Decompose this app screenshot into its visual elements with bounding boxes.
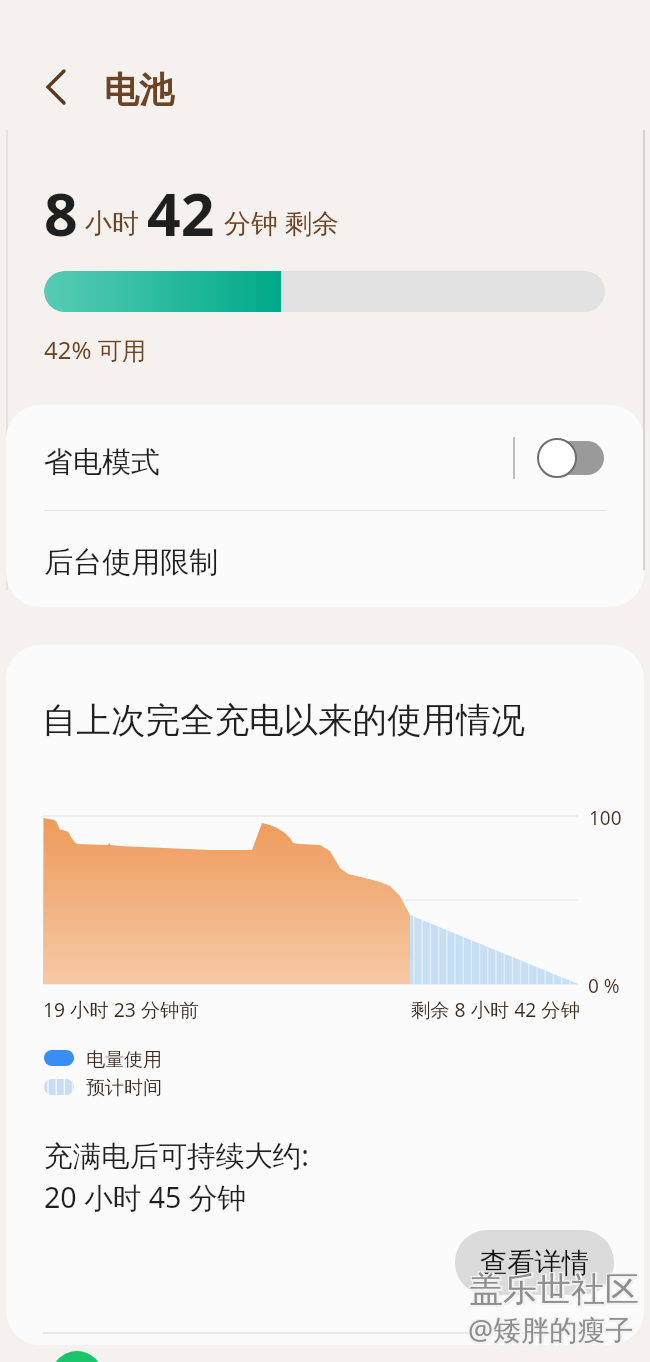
staticText: 省电模式 [44,444,160,481]
staticText: 19 小时 23 分钟前 [43,996,199,1022]
staticText: 盖乐世社区 [469,1268,639,1311]
button[interactable]: Back [29,60,83,114]
staticText: 8 [44,173,78,253]
staticText: 查看详情 [480,1246,590,1280]
staticText: 0 % [588,973,620,999]
button[interactable]: 后台使用限制 [6,511,644,607]
staticText: 盖乐世社区 [468,1267,638,1310]
button[interactable]: 查看详情 [455,1230,614,1295]
staticText: 后台使用限制 [44,544,218,581]
staticText: 42% 可用 [44,333,146,366]
staticText: @矮胖的瘦子 [467,1309,633,1347]
staticText: 充满电后可持续大约: [44,1135,310,1174]
staticText: 剩余 8 小时 42 分钟 [411,996,580,1022]
staticText: 分钟 剩余 [224,204,340,241]
staticText: @矮胖的瘦子 [470,1309,636,1347]
staticText: 100 [589,805,622,831]
staticText: 盖乐世社区 [468,1270,638,1313]
staticText: 电量使用 [86,1048,162,1072]
staticText: @矮胖的瘦子 [470,1312,636,1350]
staticText: 42 [147,173,215,253]
staticText: @矮胖的瘦子 [467,1312,633,1350]
button[interactable]: Power saving mode toggle [538,438,604,478]
staticText: 盖乐世社区 [471,1267,641,1310]
staticText: 预计时间 [86,1076,162,1100]
staticText: 自上次完全充电以来的使用情况 [42,699,525,742]
staticText: 盖乐世社区 [471,1270,641,1313]
staticText: 20 小时 45 分钟 [44,1177,247,1216]
staticText: @矮胖的瘦子 [468,1310,634,1348]
button[interactable]: 省电模式 [6,405,644,510]
staticText: 小时 [85,207,139,241]
staticText: 电池 [104,68,174,112]
